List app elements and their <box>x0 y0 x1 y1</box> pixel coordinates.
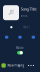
staticText: Now Playing <box>7 64 24 67</box>
staticText: label <box>23 25 30 29</box>
staticText: Mode <box>16 46 24 50</box>
staticText: Artist <box>20 14 27 17</box>
staticText: Song Title <box>20 6 36 12</box>
